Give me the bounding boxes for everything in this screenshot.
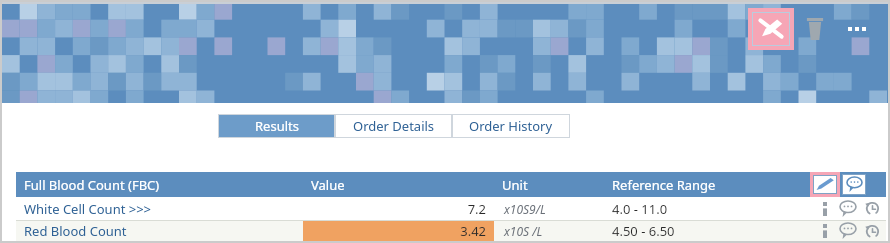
button[interactable]: Info	[814, 198, 836, 220]
staticText: Order Details	[353, 117, 435, 135]
button[interactable]: Order Details	[335, 114, 452, 138]
staticText: Order History	[469, 117, 553, 135]
button[interactable]: More options	[836, 8, 878, 50]
staticText: Reference Range	[612, 176, 716, 194]
staticText: Results	[255, 117, 299, 135]
staticText: 7.2	[467, 200, 486, 218]
button[interactable]: History	[860, 197, 884, 220]
button[interactable]: Results	[218, 114, 335, 138]
button[interactable]: Comment	[836, 221, 860, 241]
staticText: 3.42	[460, 222, 486, 240]
staticText: White Cell Count >>>	[24, 200, 152, 218]
button[interactable]: Comment	[836, 197, 860, 220]
button[interactable]: History	[860, 221, 884, 241]
button[interactable]: Delete	[798, 12, 832, 46]
staticText: 4.0 - 11.0	[612, 200, 668, 218]
staticText: Full Blood Count (FBC)	[24, 176, 160, 194]
staticText: x10S /L	[504, 223, 543, 239]
staticText: Red Blood Count	[24, 222, 127, 240]
button[interactable]: Edit all	[813, 175, 837, 194]
button[interactable]: Unsign	[752, 12, 790, 46]
button[interactable]: Info	[814, 221, 836, 241]
button[interactable]: Comments	[842, 174, 866, 195]
button[interactable]: Order History	[452, 114, 570, 138]
staticText: Unit	[502, 176, 528, 194]
staticText: Value	[311, 176, 345, 194]
staticText: x10S9/L	[504, 201, 546, 217]
staticText: 4.50 - 6.50	[612, 222, 675, 240]
